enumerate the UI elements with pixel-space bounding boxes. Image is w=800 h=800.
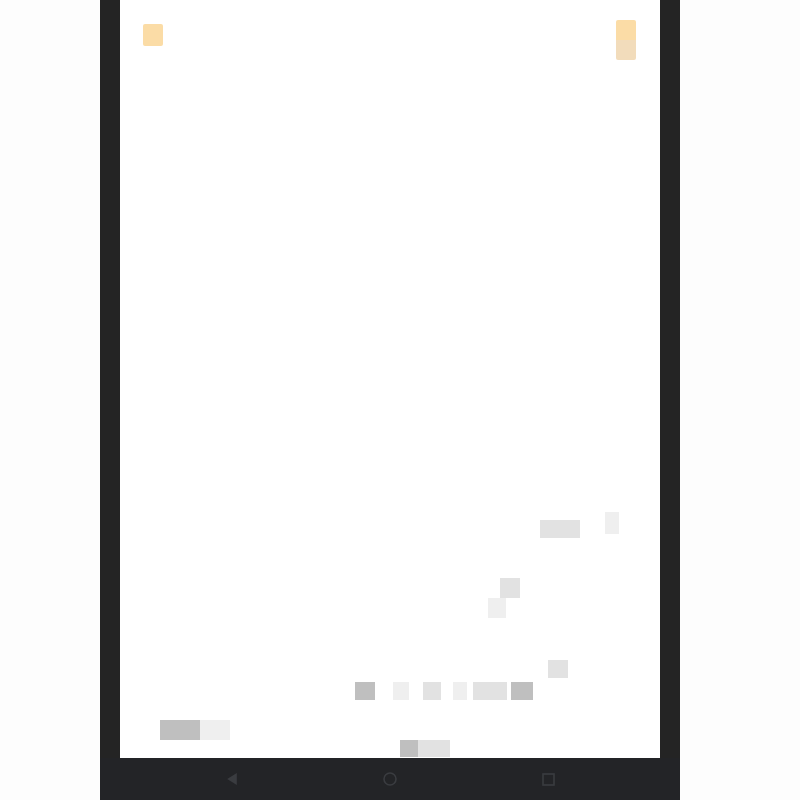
button[interactable]: Menu <box>134 14 170 50</box>
button[interactable]: Recent apps <box>536 767 560 791</box>
button[interactable]: Home <box>378 767 402 791</box>
button[interactable]: Action <box>608 12 644 64</box>
button[interactable]: Back <box>220 767 244 791</box>
